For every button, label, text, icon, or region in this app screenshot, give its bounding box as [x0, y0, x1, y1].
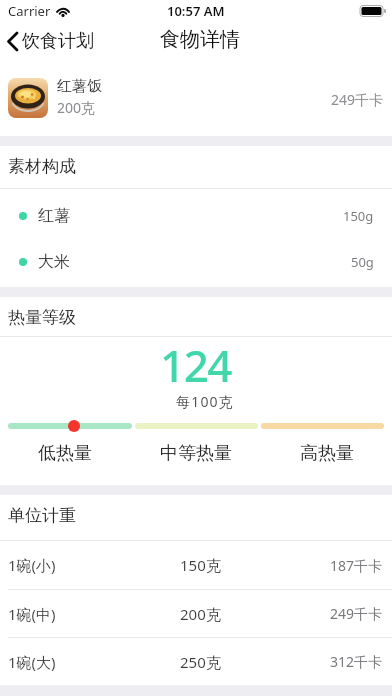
staticText: Carrier — [8, 2, 51, 20]
staticText: 187千卡 — [330, 556, 383, 575]
staticText: 10:57 AM — [167, 2, 225, 20]
staticText: 200克 — [57, 98, 96, 117]
staticText: 食物详情 — [160, 27, 240, 52]
button[interactable]: 1碗(大) — [0, 638, 392, 685]
staticText: 249千卡 — [330, 604, 383, 623]
staticText: 250克 — [180, 652, 221, 672]
staticText: 热量等级 — [8, 307, 76, 328]
staticText: 低热量 — [38, 442, 92, 465]
staticText: 150克 — [180, 555, 221, 575]
staticText: 124 — [160, 335, 232, 395]
button[interactable]: 大米 — [19, 239, 374, 285]
staticText: 中等热量 — [160, 442, 232, 465]
button[interactable]: 红薯 — [19, 193, 374, 239]
staticText: 素材构成 — [8, 156, 76, 177]
staticText: 150g — [343, 207, 374, 225]
staticText: 红薯 — [38, 206, 70, 226]
staticText: 大米 — [38, 252, 70, 272]
staticText: 1碗(小) — [8, 555, 56, 575]
staticText: 每100克 — [176, 392, 235, 411]
button[interactable]: 1碗(中) — [0, 590, 392, 637]
staticText: 1碗(中) — [8, 604, 56, 624]
button[interactable]: 饮食计划 — [0, 30, 94, 53]
staticText: 249千卡 — [331, 90, 384, 109]
staticText: 高热量 — [300, 442, 354, 465]
button[interactable]: 红薯饭 — [0, 62, 392, 136]
button[interactable]: 1碗(小) — [0, 541, 392, 589]
staticText: 312千卡 — [330, 652, 383, 671]
staticText: 50g — [351, 253, 374, 271]
staticText: 饮食计划 — [22, 30, 94, 53]
staticText: 单位计重 — [8, 505, 76, 526]
staticText: 1碗(大) — [8, 652, 56, 672]
staticText: 200克 — [180, 604, 221, 624]
staticText: 红薯饭 — [57, 77, 102, 96]
